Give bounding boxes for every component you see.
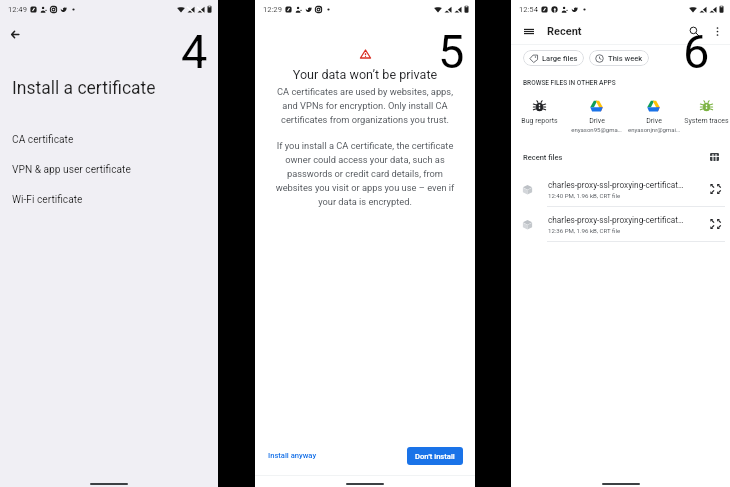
button[interactable]: Wi-Fi certificate bbox=[0, 185, 218, 215]
button[interactable]: Don’t install bbox=[407, 447, 463, 465]
button[interactable]: Drive bbox=[568, 100, 625, 133]
staticText: Install anyway bbox=[268, 451, 317, 460]
staticText: Don’t install bbox=[415, 452, 455, 461]
staticText: charles-proxy-ssl-proxying-certificat… bbox=[548, 215, 684, 225]
staticText: 5 bbox=[438, 24, 465, 79]
staticText: If you install a CA certificate, the cer… bbox=[270, 140, 460, 207]
staticText: System traces bbox=[684, 117, 729, 125]
button[interactable]: Search bbox=[682, 19, 706, 43]
button[interactable]: charles-proxy-ssl-proxying-certificat… bbox=[511, 207, 730, 241]
staticText: 6 bbox=[683, 24, 710, 79]
staticText: Large files bbox=[542, 54, 578, 63]
button[interactable]: charles-proxy-ssl-proxying-certificat… bbox=[511, 172, 730, 206]
button[interactable]: Large files bbox=[523, 50, 584, 66]
staticText: Install a certificate bbox=[12, 78, 156, 99]
staticText: Recent files bbox=[523, 153, 563, 162]
button[interactable]: Menu bbox=[517, 19, 541, 43]
staticText: Your data won’t be private bbox=[255, 67, 475, 82]
staticText: Recent bbox=[547, 25, 582, 38]
staticText: Wi-Fi certificate bbox=[12, 194, 83, 206]
button[interactable]: CA certificate bbox=[0, 125, 218, 155]
staticText: 12:29 bbox=[263, 5, 282, 14]
button[interactable]: Expand bbox=[707, 215, 725, 233]
staticText: 12:49 bbox=[8, 5, 27, 14]
staticText: enyasonjnr@gmai… bbox=[628, 126, 680, 133]
staticText: 12:36 PM, 1.96 kB, CRT file bbox=[548, 227, 621, 234]
staticText: 12:40 PM, 1.96 kB, CRT file bbox=[548, 192, 621, 199]
button[interactable]: Back bbox=[3, 22, 27, 46]
staticText: Drive bbox=[589, 117, 605, 125]
button[interactable]: This week bbox=[589, 50, 649, 66]
button[interactable]: Install anyway bbox=[264, 447, 321, 464]
staticText: This week bbox=[608, 54, 643, 63]
button[interactable]: Grid view bbox=[706, 149, 722, 165]
staticText: enyason95@gma… bbox=[571, 126, 622, 133]
button[interactable]: Expand bbox=[707, 180, 725, 198]
staticText: 12:54 bbox=[519, 5, 538, 14]
staticText: BROWSE FILES IN OTHER APPS bbox=[523, 79, 616, 87]
button[interactable]: More options bbox=[706, 20, 728, 42]
button[interactable]: VPN & app user certificate bbox=[0, 155, 218, 185]
staticText: CA certificates are used by websites, ap… bbox=[270, 86, 460, 125]
staticText: VPN & app user certificate bbox=[12, 164, 131, 176]
staticText: Bug reports bbox=[521, 117, 558, 125]
button[interactable]: System traces bbox=[682, 100, 730, 125]
button[interactable]: Bug reports bbox=[511, 100, 568, 125]
staticText: CA certificate bbox=[12, 134, 74, 146]
button[interactable]: Drive bbox=[625, 100, 682, 133]
staticText: charles-proxy-ssl-proxying-certificat… bbox=[548, 180, 684, 190]
staticText: Drive bbox=[646, 117, 662, 125]
staticText: 4 bbox=[181, 24, 208, 79]
